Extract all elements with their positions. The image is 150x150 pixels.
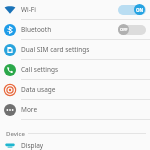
button[interactable]: Wi-Fi — [0, 0, 150, 19]
button[interactable]: Dual SIM card settings — [0, 40, 150, 59]
button[interactable]: Bluetooth — [0, 20, 150, 39]
staticText: Dual SIM card settings — [21, 45, 146, 54]
staticText: Call settings — [21, 65, 146, 74]
staticText: Device — [6, 130, 25, 138]
button[interactable]: Data usage — [0, 80, 150, 99]
staticText: Data usage — [21, 85, 146, 94]
button[interactable]: Wi-Fi on — [118, 4, 146, 15]
button[interactable]: More — [0, 100, 150, 119]
staticText: ON — [136, 7, 144, 13]
staticText: OFF — [120, 27, 128, 32]
staticText: Display — [21, 141, 146, 150]
staticText: Bluetooth — [21, 25, 118, 34]
staticText: More — [21, 105, 146, 114]
staticText: Wi-Fi — [21, 5, 118, 14]
button[interactable]: Bluetooth off — [118, 24, 146, 35]
button[interactable]: Call settings — [0, 60, 150, 79]
button[interactable]: Display — [0, 140, 150, 150]
